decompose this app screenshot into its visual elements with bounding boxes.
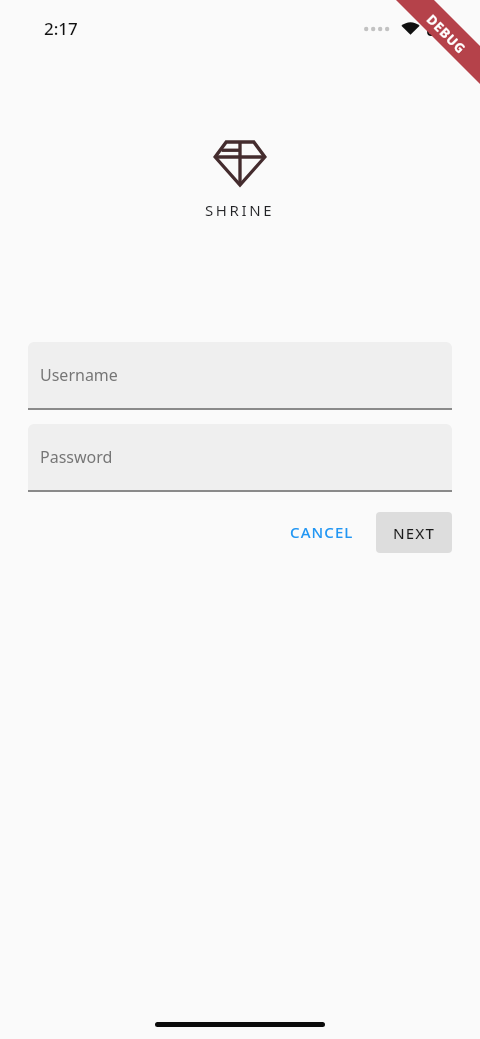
button[interactable]: CANCEL — [276, 511, 368, 553]
staticText: 2:17 — [44, 17, 78, 40]
button[interactable]: NEXT — [376, 512, 452, 553]
staticText: SHRINE — [205, 200, 275, 220]
staticText: NEXT — [393, 523, 435, 543]
button[interactable]: Password — [28, 424, 452, 492]
button[interactable]: Username — [28, 342, 452, 410]
staticText: Password — [40, 446, 113, 468]
staticText: DEBUG — [423, 10, 470, 58]
staticText: Username — [40, 364, 118, 386]
staticText: CANCEL — [290, 522, 354, 542]
other: Shrine logo — [213, 137, 267, 187]
